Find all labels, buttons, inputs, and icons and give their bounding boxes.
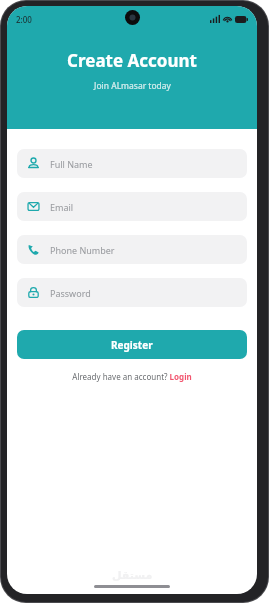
staticText: Create Account [67, 49, 197, 72]
staticText: Register [111, 338, 153, 352]
button[interactable]: Full Name [17, 149, 247, 178]
button[interactable]: Email [17, 192, 247, 221]
staticText: Join ALmasar today [94, 80, 171, 92]
button[interactable]: Already have an account? Login [17, 371, 247, 382]
staticText: Full Name [50, 158, 93, 170]
staticText: Email [50, 201, 74, 213]
staticText: 2:00 [16, 14, 32, 25]
staticText: Password [50, 287, 91, 299]
button[interactable]: Password [17, 278, 247, 307]
button[interactable]: Phone Number [17, 235, 247, 264]
staticText: Phone Number [50, 244, 115, 256]
button[interactable]: Register [17, 330, 247, 359]
staticText: مستقل [112, 569, 153, 582]
staticText: Already have an account? Login [72, 371, 192, 382]
